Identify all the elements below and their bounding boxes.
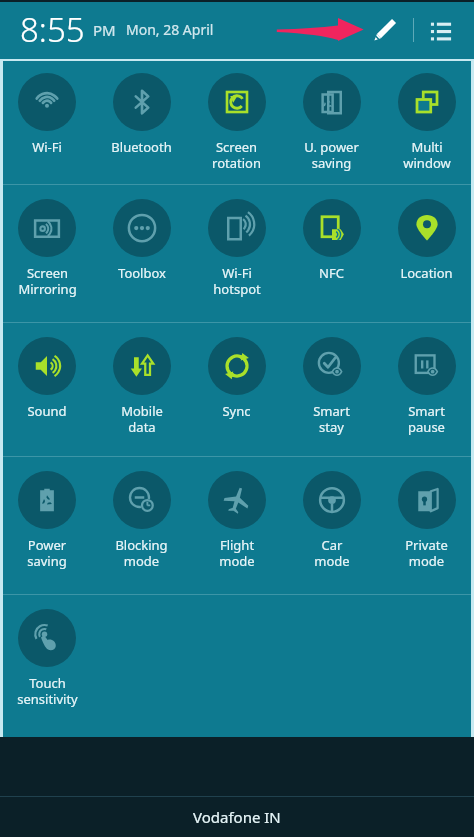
staticText: Wi-Fi hotspot: [213, 264, 261, 297]
button[interactable]: Power saving: [0, 457, 94, 594]
button[interactable]: Smart pause: [379, 323, 474, 456]
button[interactable]: Wi-Fi hotspot: [189, 185, 284, 322]
staticText: 8:55: [20, 7, 85, 52]
button[interactable]: Screen Mirroring: [0, 185, 94, 322]
staticText: Car mode: [314, 536, 350, 569]
staticText: Toolbox: [118, 264, 166, 282]
staticText: Location: [400, 264, 453, 282]
button[interactable]: Multi window: [379, 59, 474, 184]
staticText: Mobile data: [121, 402, 163, 435]
staticText: U. power saving: [304, 138, 359, 171]
staticText: Multi window: [403, 138, 451, 171]
staticText: Mon, 28 April: [126, 20, 214, 39]
staticText: Power saving: [27, 536, 67, 569]
staticText: Sound: [27, 402, 67, 420]
button[interactable]: Screen rotation: [189, 59, 284, 184]
staticText: NFC: [319, 264, 344, 282]
staticText: Blocking mode: [115, 536, 168, 569]
button[interactable]: Smart stay: [284, 323, 379, 456]
staticText: PM: [93, 20, 116, 40]
staticText: Sync: [222, 402, 251, 420]
staticText: Touch sensitivity: [17, 674, 78, 707]
staticText: Bluetooth: [111, 138, 172, 156]
staticText: Flight mode: [219, 536, 255, 569]
button[interactable]: NFC: [284, 185, 379, 322]
button[interactable]: Sync: [189, 323, 284, 456]
button[interactable]: Touch sensitivity: [0, 595, 94, 730]
staticText: Smart pause: [408, 402, 445, 435]
button[interactable]: Private mode: [379, 457, 474, 594]
staticText: Screen Mirroring: [18, 264, 77, 297]
button[interactable]: Wi-Fi: [0, 59, 94, 184]
staticText: Wi-Fi: [32, 138, 62, 156]
button[interactable]: Toolbox: [94, 185, 189, 322]
button[interactable]: Bluetooth: [94, 59, 189, 184]
button[interactable]: U. power saving: [284, 59, 379, 184]
button[interactable]: Mobile data: [94, 323, 189, 456]
button[interactable]: Blocking mode: [94, 457, 189, 594]
staticText: Vodafone IN: [193, 807, 281, 827]
button[interactable]: Location: [379, 185, 474, 322]
button[interactable]: Sound: [0, 323, 94, 456]
staticText: Private mode: [405, 536, 448, 569]
button[interactable]: Car mode: [284, 457, 379, 594]
button[interactable]: Notifications list: [422, 11, 460, 49]
button[interactable]: Flight mode: [189, 457, 284, 594]
staticText: Screen rotation: [212, 138, 261, 171]
staticText: Smart stay: [313, 402, 350, 435]
button[interactable]: Edit quick settings: [365, 10, 405, 50]
